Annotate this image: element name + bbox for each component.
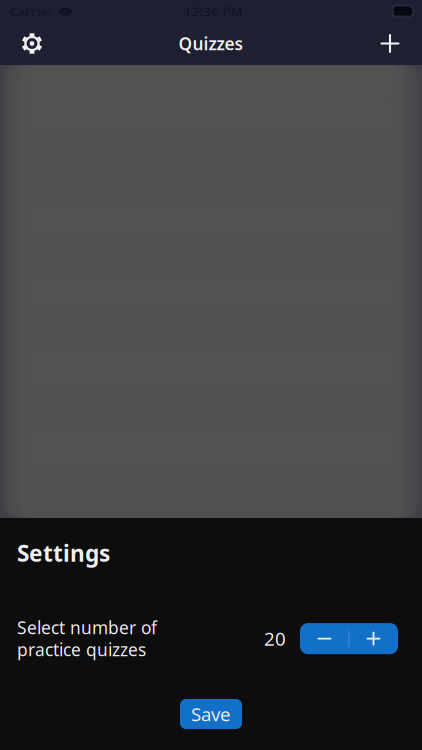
staticText: 12:36 PM [183, 2, 242, 20]
button[interactable]: Settings [10, 22, 54, 64]
button[interactable]: Increase [349, 623, 397, 654]
staticText: Settings [17, 538, 110, 568]
staticText: practice quizzes [17, 638, 146, 661]
staticText: 20 [264, 626, 286, 651]
button[interactable]: Decrease [300, 623, 348, 654]
staticText: Save [191, 702, 231, 726]
button[interactable]: Save [180, 699, 242, 729]
button[interactable]: Add quiz [368, 22, 412, 64]
staticText: Select number of [17, 616, 157, 639]
staticText: Quizzes [178, 32, 243, 55]
staticText: Carrier [10, 2, 54, 20]
